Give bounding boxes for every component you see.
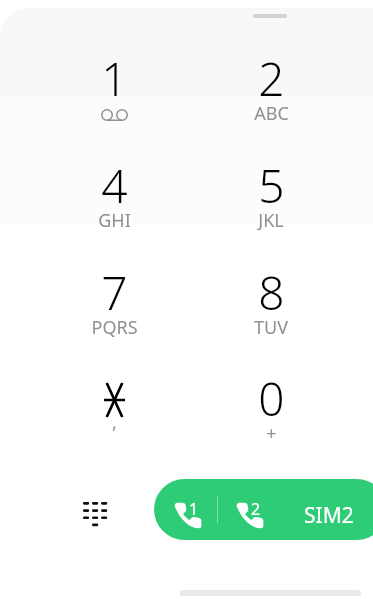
staticText: GHI [98,208,131,232]
button[interactable]: Star [66,349,162,445]
button[interactable]: 1 [66,29,162,125]
staticText: 1 [189,498,199,520]
staticText: 7 [101,261,128,324]
staticText: + [266,421,277,445]
button[interactable]: 4 [66,136,162,232]
button[interactable]: Call [154,479,373,540]
button[interactable]: Show keypad [71,490,119,538]
button[interactable]: 5 [223,136,319,232]
staticText: 2 [258,47,285,110]
staticText: PQRS [91,315,138,339]
staticText: TUV [254,315,288,339]
button[interactable]: 0 [223,349,319,445]
staticText: 0 [258,367,285,430]
button[interactable]: 7 [66,243,162,339]
staticText: , [112,410,117,435]
button[interactable]: 8 [223,243,319,339]
staticText: 2 [251,498,261,520]
staticText: SIM2 [304,501,354,530]
staticText: 8 [258,261,285,324]
staticText: 5 [258,154,285,217]
staticText: 4 [101,154,128,217]
button[interactable]: 2 [223,29,319,125]
staticText: 1 [101,47,128,110]
staticText: ABC [254,101,289,125]
staticText: JKL [258,208,284,232]
